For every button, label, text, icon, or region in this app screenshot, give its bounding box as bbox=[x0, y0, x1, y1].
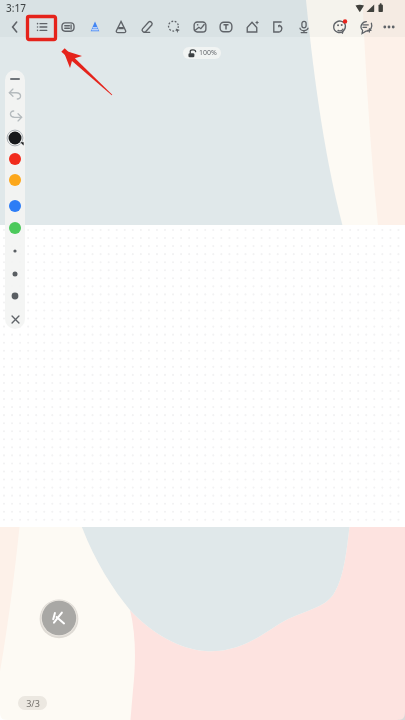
button[interactable]: Lasso select bbox=[161, 15, 187, 38]
button[interactable]: Stroke width bbox=[5, 264, 25, 284]
button[interactable]: Colour bbox=[5, 196, 25, 216]
button[interactable]: Pen bbox=[82, 15, 108, 38]
button[interactable]: Colour bbox=[5, 170, 25, 190]
button[interactable]: Comment bbox=[353, 15, 379, 38]
button[interactable]: 100% bbox=[183, 47, 221, 59]
button[interactable]: Insert image bbox=[187, 15, 213, 38]
button[interactable]: 3/3 bbox=[18, 696, 47, 710]
button[interactable]: Redo bbox=[5, 105, 25, 125]
button[interactable]: Eraser bbox=[134, 15, 160, 38]
button[interactable]: Close toolbar bbox=[5, 309, 25, 329]
button[interactable]: Crop bbox=[265, 15, 291, 38]
button[interactable]: Highlighter bbox=[108, 15, 134, 38]
button[interactable]: Gemini assistant bbox=[39, 598, 79, 638]
staticText: 3/3 bbox=[26, 697, 40, 709]
button[interactable]: Shape bbox=[239, 15, 265, 38]
button[interactable]: Colour bbox=[5, 218, 25, 238]
button[interactable]: Text box bbox=[213, 15, 239, 38]
staticText: 100% bbox=[199, 48, 217, 58]
button[interactable]: More options bbox=[376, 15, 402, 38]
button[interactable]: Stroke width bbox=[5, 241, 25, 261]
button[interactable]: Sticky note bbox=[55, 15, 81, 38]
button[interactable]: Colour bbox=[5, 128, 25, 148]
staticText: 3:17 bbox=[6, 1, 26, 15]
button[interactable]: Record audio bbox=[291, 15, 317, 38]
button[interactable]: Colour bbox=[5, 149, 25, 169]
button[interactable]: Stickers bbox=[327, 15, 353, 38]
button[interactable]: Back bbox=[2, 15, 28, 38]
button[interactable]: Stroke width bbox=[5, 286, 25, 306]
button[interactable]: List view bbox=[29, 15, 55, 38]
button[interactable]: Undo bbox=[5, 84, 25, 104]
